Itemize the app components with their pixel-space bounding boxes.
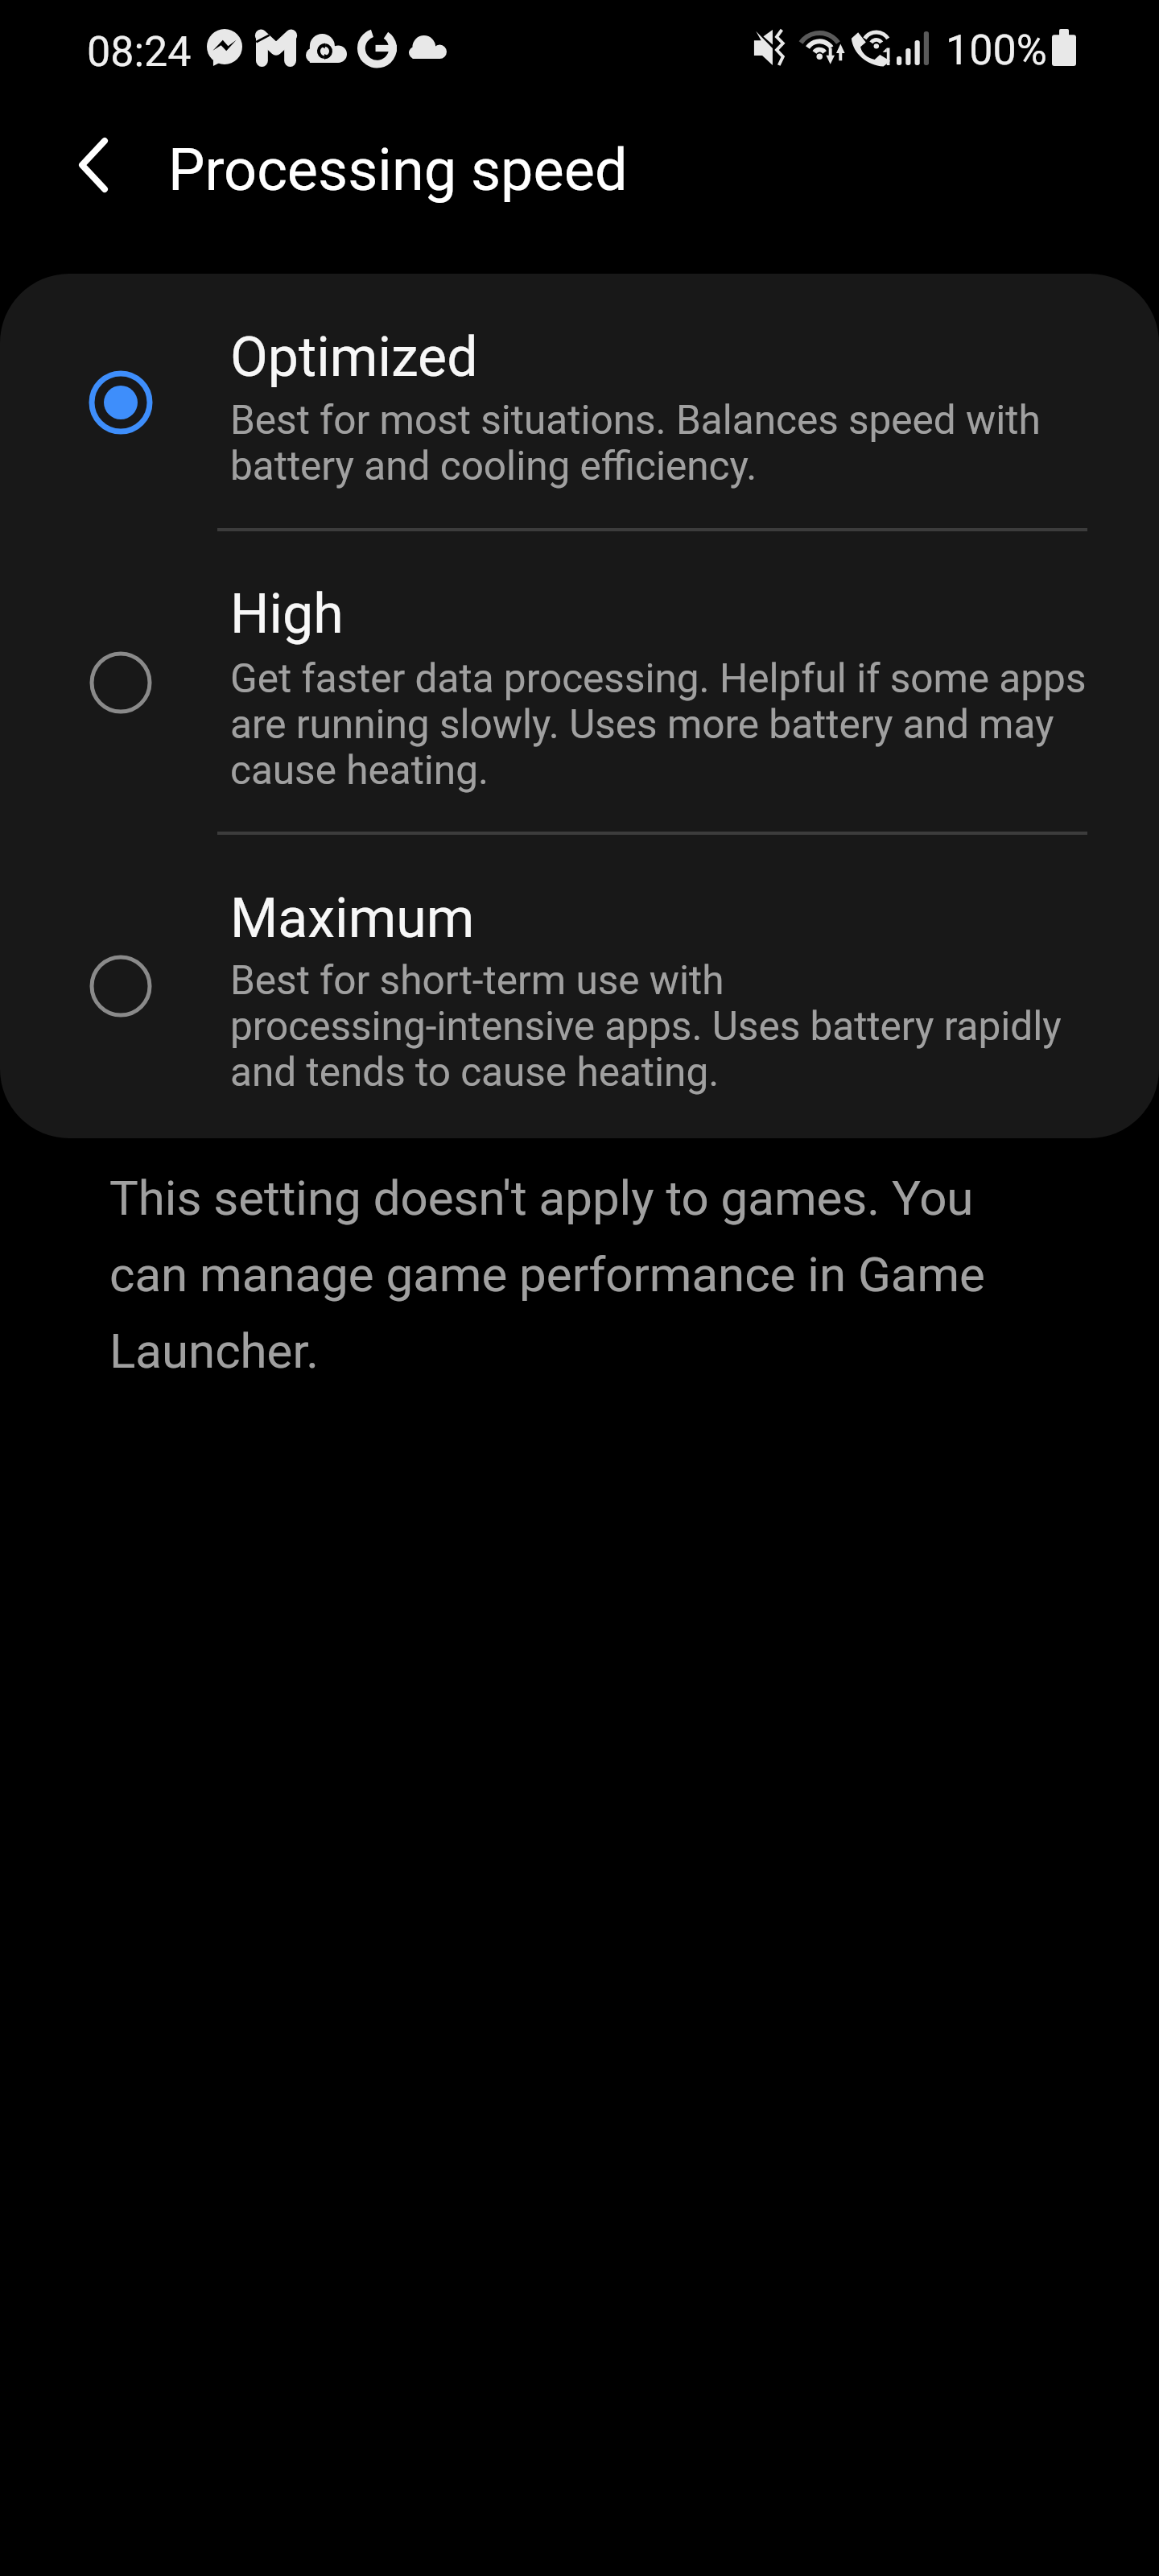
staticText: Get faster data processing. Helpful if s… [230,656,1087,794]
staticText: Best for most situations. Balances speed… [230,398,1041,489]
button[interactable]: High [0,531,1159,834]
staticText: This setting doesn't apply to games. You… [109,1154,1059,1384]
staticText: Optimized [230,325,478,390]
staticText: 100% [946,26,1047,75]
button[interactable]: Optimized [0,274,1159,531]
staticText: High [230,582,344,646]
staticText: Maximum [230,886,475,951]
button[interactable]: Maximum [0,835,1159,1138]
staticText: 08:24 [87,27,192,76]
button[interactable]: Back [33,105,154,225]
staticText: Processing speed [168,141,628,203]
staticText: Best for short-term use with processing-… [230,958,1062,1096]
